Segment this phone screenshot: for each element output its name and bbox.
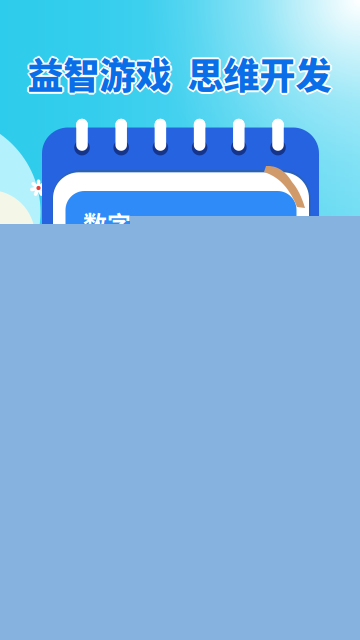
staticText: 益智游戏 思维开发 [27, 45, 331, 97]
staticText: 益智游戏 思维开发 [28, 46, 332, 98]
staticText: 益智游戏 思维开发 [26, 46, 330, 98]
staticText: 益智游戏 思维开发 [28, 48, 332, 101]
staticText: 益智游戏 思维开发 [27, 47, 331, 99]
staticText: 益智游戏 思维开发 [29, 47, 333, 99]
staticText: 益智游戏 思维开发 [25, 47, 329, 99]
staticText: 数字 [83, 206, 131, 240]
staticText: 益智游戏 思维开发 [26, 48, 330, 101]
staticText: 益智游戏 思维开发 [27, 49, 331, 101]
